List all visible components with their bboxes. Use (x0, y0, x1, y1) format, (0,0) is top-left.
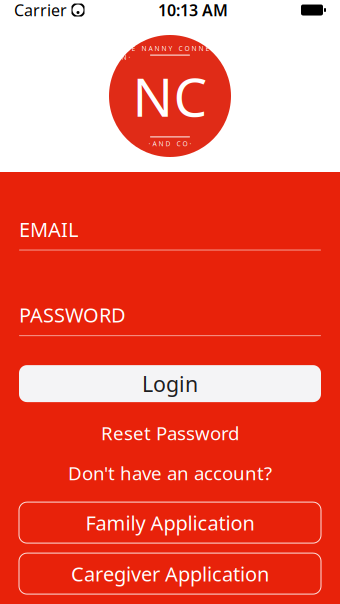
staticText: Carrier (14, 0, 67, 21)
staticText: EMAIL (19, 216, 78, 243)
staticText: Family Application (85, 509, 254, 536)
staticText: NC (132, 61, 207, 131)
button[interactable]: Family Application (19, 502, 321, 543)
staticText: · T H E N A N N Y C O N N E C T I O N · (114, 44, 225, 62)
staticText: Login (142, 369, 198, 398)
button[interactable]: Don't have an account? (19, 462, 321, 484)
button[interactable]: Reset Password (19, 422, 321, 444)
button[interactable]: Caregiver Application (19, 553, 321, 594)
staticText: Caregiver Application (71, 560, 269, 587)
staticText: Don't have an account? (68, 461, 272, 485)
staticText: Reset Password (101, 421, 239, 445)
staticText: · A N D C O · (148, 139, 191, 148)
button[interactable]: Login (19, 365, 321, 402)
staticText: 10:13 AM (158, 0, 228, 21)
staticText: PASSWORD (19, 302, 126, 328)
